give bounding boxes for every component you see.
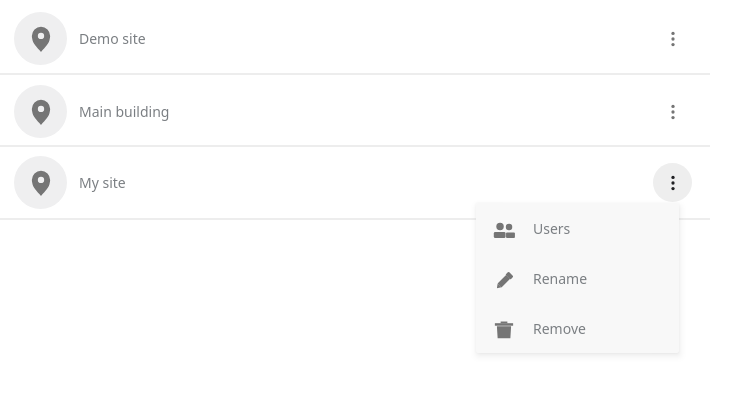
button[interactable]: Rename [476, 253, 679, 303]
staticText: Remove [533, 319, 586, 338]
button[interactable]: My site [0, 146, 738, 219]
staticText: Users [533, 219, 571, 238]
button[interactable]: More options [653, 92, 692, 131]
button[interactable]: Demo site [0, 2, 738, 75]
button[interactable]: More options [653, 163, 692, 202]
staticText: My site [79, 173, 126, 192]
staticText: Demo site [79, 29, 146, 48]
button[interactable]: Users [476, 203, 679, 253]
staticText: Rename [533, 269, 588, 288]
button[interactable]: Remove [476, 303, 679, 353]
staticText: Main building [79, 102, 170, 121]
button[interactable]: More options [653, 19, 692, 58]
button[interactable]: Main building [0, 75, 738, 147]
